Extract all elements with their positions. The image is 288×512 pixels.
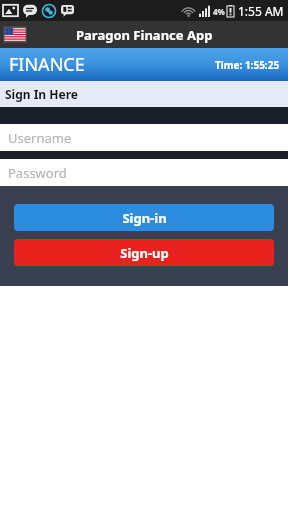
staticText: Time: 1:55:25 [215, 58, 280, 72]
staticText: Paragon Finance App [76, 26, 213, 44]
staticText: Password [8, 164, 67, 182]
button[interactable]: Password [0, 159, 288, 186]
staticText: Sign-in [122, 209, 167, 227]
button[interactable]: Language: United States [4, 27, 26, 42]
staticText: 1:55 AM [238, 3, 284, 19]
staticText: 4% [213, 6, 225, 17]
button[interactable]: Username [0, 124, 288, 151]
button[interactable]: Sign-up [14, 239, 274, 266]
staticText: Sign In Here [5, 86, 78, 102]
staticText: Sign-up [120, 244, 169, 262]
staticText: FINANCE [9, 52, 85, 77]
button[interactable]: Sign-in [14, 204, 274, 231]
staticText: Username [8, 129, 72, 147]
